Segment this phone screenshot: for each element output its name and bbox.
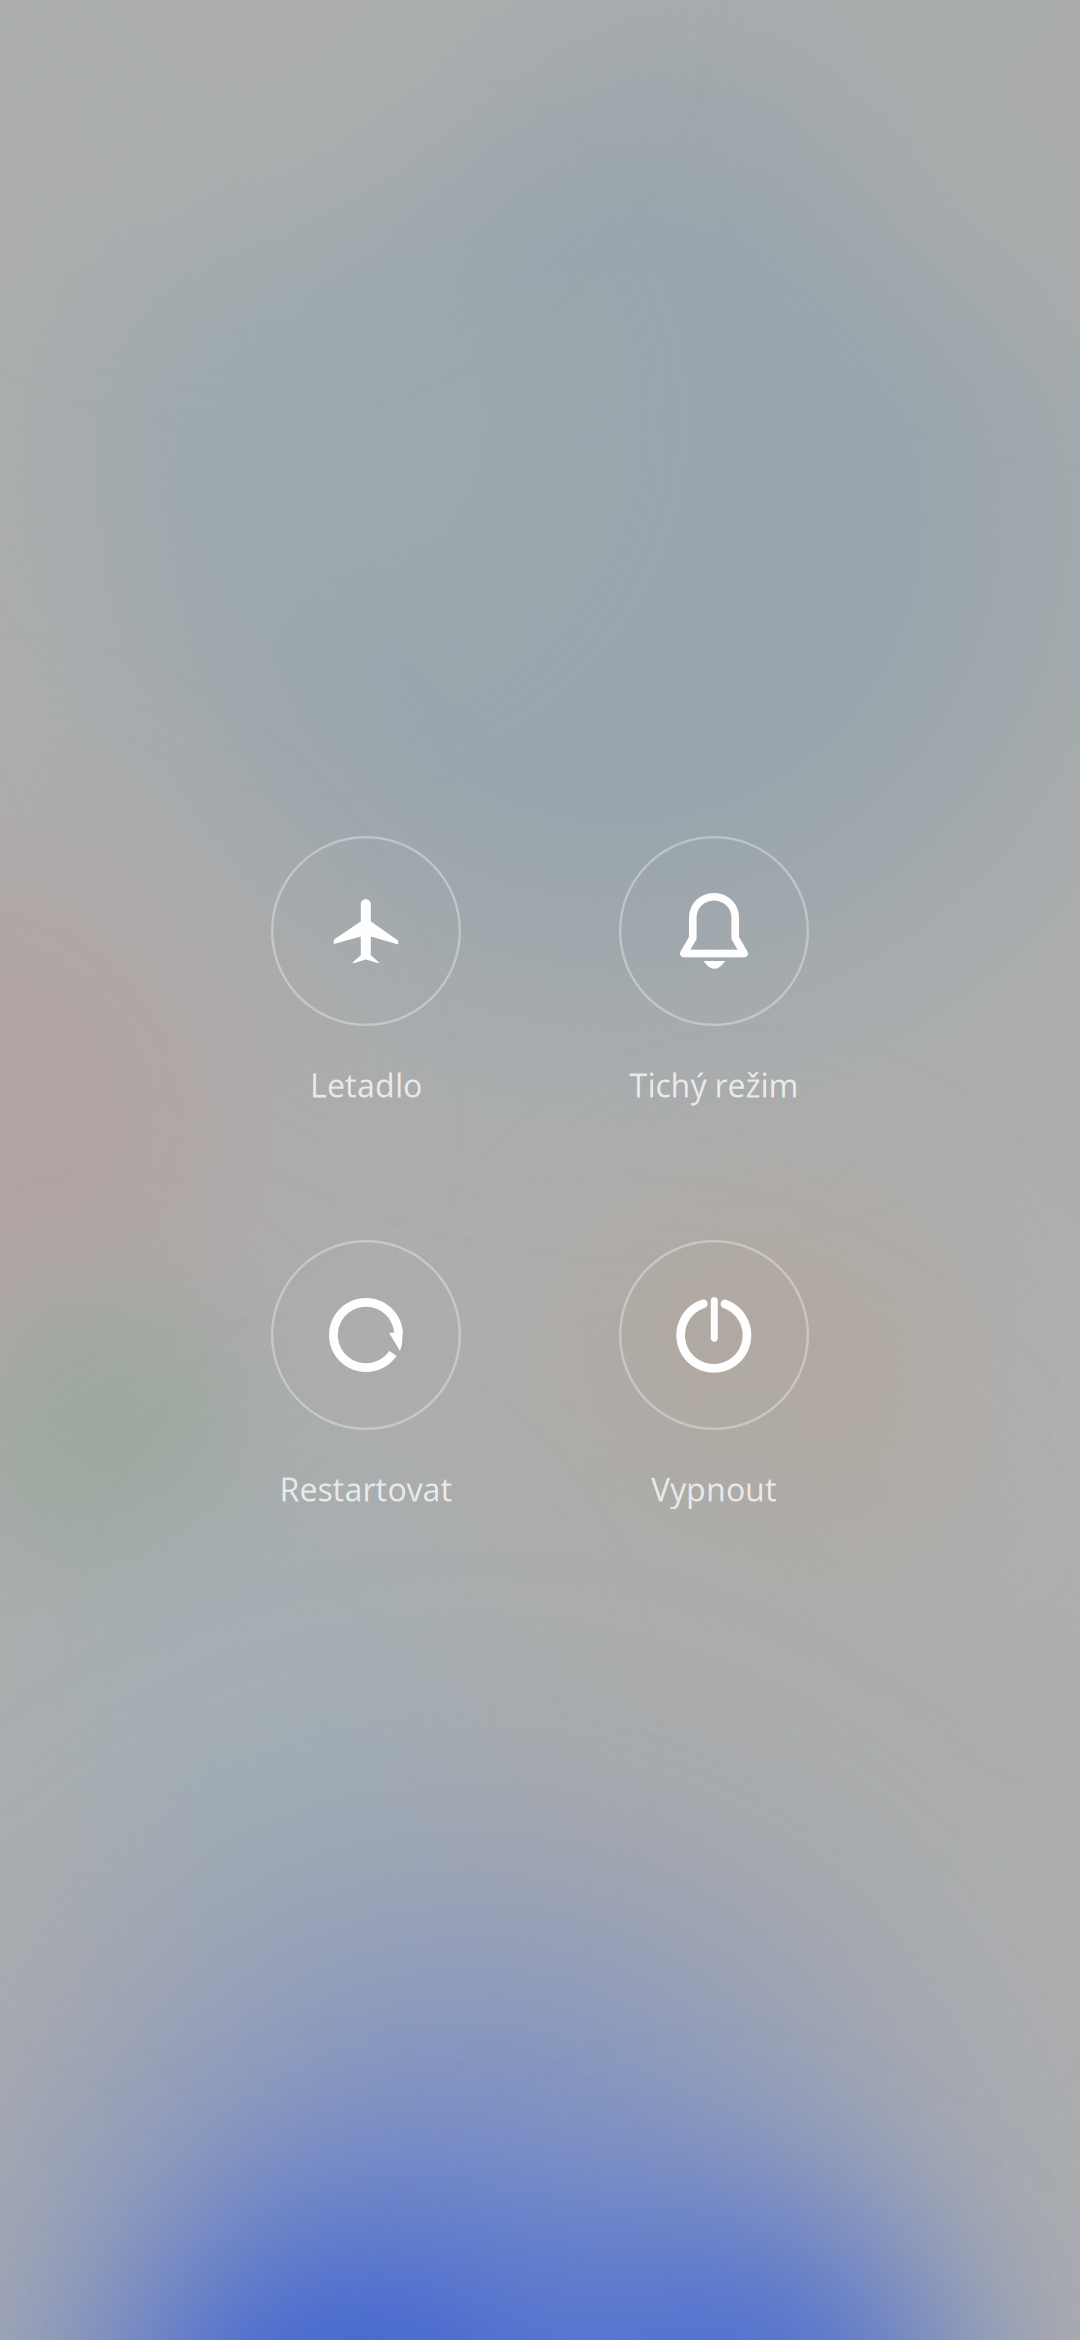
staticText: Restartovat — [279, 1468, 452, 1510]
staticText: Tichý režim — [629, 1064, 798, 1106]
button[interactable]: Tichý režim — [540, 836, 888, 1104]
button[interactable]: Letadlo — [192, 836, 540, 1104]
button[interactable]: Vypnout — [540, 1240, 888, 1508]
staticText: Letadlo — [310, 1064, 422, 1106]
staticText: Vypnout — [651, 1468, 777, 1510]
button[interactable]: Restartovat — [192, 1240, 540, 1508]
